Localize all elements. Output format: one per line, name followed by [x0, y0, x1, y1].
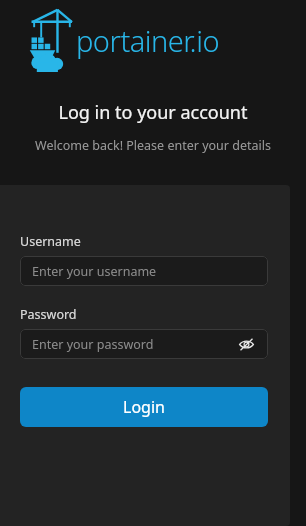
staticText: Enter your password — [32, 336, 236, 353]
button[interactable]: Enter your username — [20, 256, 268, 286]
button[interactable]: Enter your password — [20, 329, 268, 359]
staticText: portainer.io — [76, 21, 220, 60]
button[interactable]: Login — [20, 387, 268, 427]
staticText: Username — [20, 233, 81, 250]
staticText: Password — [20, 306, 77, 323]
staticText: Log in to your account — [0, 100, 306, 125]
staticText: Welcome back! Please enter your details — [26, 137, 280, 154]
staticText: Login — [123, 396, 165, 418]
staticText: Enter your username — [32, 263, 256, 280]
button[interactable]: Show password — [236, 334, 256, 354]
